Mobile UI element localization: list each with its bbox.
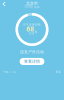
button[interactable]: 更多 xyxy=(55,70,61,73)
staticText: 68 xyxy=(26,25,34,33)
button[interactable]: Back xyxy=(0,1,6,8)
staticText: 查看详情 xyxy=(24,59,40,64)
staticText: 更多 xyxy=(55,70,61,73)
button[interactable]: PM2.5 32 xyxy=(2,70,16,73)
staticText: PM2.5 32 xyxy=(2,70,16,73)
button[interactable]: 查看详情 xyxy=(20,58,44,65)
staticText: 优良 xyxy=(29,32,35,35)
staticText: 空气质量指数 xyxy=(23,23,41,26)
staticText: 良 xyxy=(35,30,38,33)
staticText: 北京市 xyxy=(26,1,38,6)
staticText: 10:00 发布 xyxy=(24,5,40,9)
staticText: 适宜户外活动 xyxy=(20,49,44,54)
